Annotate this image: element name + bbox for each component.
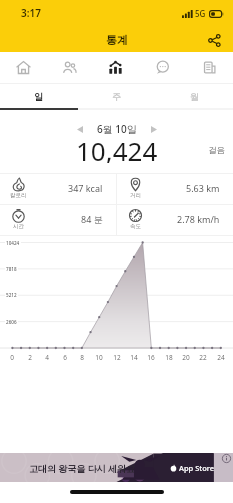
button[interactable]: Share <box>203 29 225 51</box>
staticText: 22 <box>196 353 210 362</box>
staticText: App Store <box>179 463 215 473</box>
staticText: 18 <box>162 353 176 362</box>
staticText: 0 <box>5 353 19 362</box>
button[interactable]: 주 <box>77 86 155 107</box>
staticText: 14 <box>127 353 141 362</box>
staticText: 20 <box>179 353 193 362</box>
staticText: 월 <box>190 91 199 102</box>
staticText: 통계 <box>106 33 128 47</box>
staticText: 10 <box>92 353 106 362</box>
staticText: 5.63 km <box>186 182 220 194</box>
staticText: 걸음 <box>208 145 225 156</box>
staticText: 2.78 km/h <box>177 213 220 225</box>
button[interactable]: Feed <box>186 52 233 83</box>
button[interactable]: 일 <box>0 86 77 107</box>
staticText: 5G <box>195 8 206 19</box>
staticText: 347 kcal <box>68 182 103 194</box>
staticText: 5212 <box>6 292 17 298</box>
staticText: 12 <box>110 353 124 362</box>
button[interactable]: 월 <box>155 86 233 107</box>
button[interactable]: Home <box>0 52 46 83</box>
button[interactable]: 거리 <box>117 174 233 204</box>
staticText: 3:17 <box>21 6 41 20</box>
button[interactable]: 속도 <box>117 205 233 235</box>
staticText: 칼로리 <box>10 192 27 199</box>
button[interactable]: 칼로리 <box>0 174 116 204</box>
button[interactable]: 고대의 왕국을 다시 세워요 <box>0 453 233 482</box>
staticText: 거리 <box>130 192 141 199</box>
staticText: 시간 <box>13 223 24 230</box>
staticText: 2606 <box>6 319 17 325</box>
button[interactable]: Previous day <box>71 120 89 138</box>
button[interactable]: Ad information <box>221 453 232 464</box>
button[interactable]: Chat <box>139 52 186 83</box>
staticText: 6 <box>58 353 72 362</box>
staticText: 2 <box>23 353 37 362</box>
staticText: 속도 <box>130 223 141 230</box>
button[interactable]: Statistics <box>92 52 139 83</box>
staticText: 84 분 <box>81 213 103 225</box>
staticText: 24 <box>214 353 228 362</box>
staticText: 16 <box>144 353 158 362</box>
button[interactable]: Next day <box>145 120 163 138</box>
button[interactable]: App Store <box>170 463 215 473</box>
staticText: 4 <box>40 353 54 362</box>
staticText: 일 <box>34 91 43 102</box>
staticText: 8 <box>75 353 89 362</box>
staticText: 고대의 왕국을 다시 세워요 <box>29 462 136 474</box>
staticText: 주 <box>112 91 121 102</box>
staticText: 10,424 <box>76 133 158 163</box>
button[interactable]: 시간 <box>0 205 116 235</box>
staticText: 6월 10일 <box>97 122 137 136</box>
button[interactable]: Friends <box>46 52 92 83</box>
staticText: 7818 <box>6 266 17 272</box>
staticText: 10424 <box>6 240 20 246</box>
